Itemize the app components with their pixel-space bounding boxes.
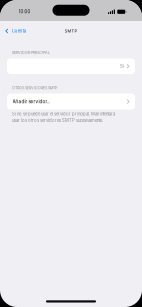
staticText: SMTP bbox=[64, 29, 77, 33]
staticText: Añadir servidor... bbox=[12, 99, 49, 104]
staticText: Cuenta bbox=[12, 28, 26, 34]
button[interactable]: Añadir servidor... bbox=[7, 93, 135, 109]
staticText: OTROS SERVIDORES SMTP bbox=[12, 85, 57, 90]
staticText: 10:00 bbox=[18, 9, 30, 14]
button[interactable]: Cuenta bbox=[0, 21, 31, 41]
button[interactable]: Sí bbox=[7, 58, 135, 74]
staticText: Sí bbox=[120, 64, 124, 69]
staticText: SERVIDOR PRINCIPAL bbox=[12, 50, 50, 55]
staticText: Si no se puede usar el servidor principa… bbox=[12, 111, 115, 123]
